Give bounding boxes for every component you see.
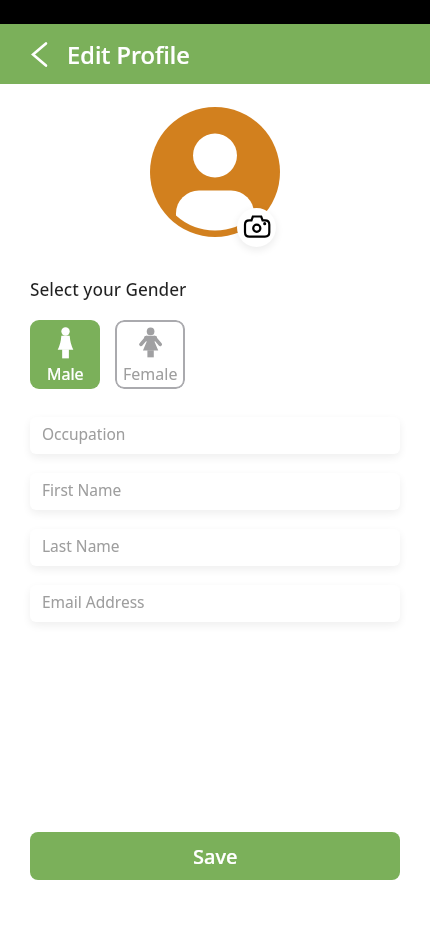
staticText: Email Address: [42, 591, 145, 612]
staticText: Male: [47, 363, 84, 385]
staticText: Occupation: [42, 423, 126, 444]
staticText: Female: [123, 363, 178, 385]
staticText: Last Name: [42, 535, 120, 556]
staticText: Edit Profile: [67, 39, 190, 71]
button[interactable]: Last Name: [30, 529, 400, 566]
button[interactable]: First Name: [30, 473, 400, 510]
staticText: Select your Gender: [30, 278, 187, 301]
button[interactable]: Occupation: [30, 417, 400, 454]
button[interactable]: Email Address: [30, 585, 400, 622]
staticText: Save: [193, 843, 238, 870]
staticText: First Name: [42, 479, 122, 500]
button[interactable]: Change profile photo: [237, 208, 276, 247]
button[interactable]: Save: [30, 832, 400, 880]
button[interactable]: Male: [30, 320, 100, 389]
button[interactable]: Female: [115, 320, 185, 389]
button[interactable]: Back: [22, 37, 56, 71]
